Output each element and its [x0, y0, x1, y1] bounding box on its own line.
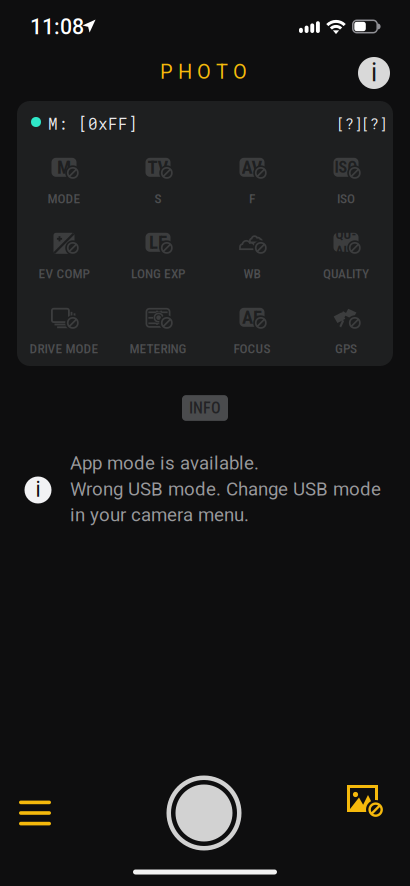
button[interactable]: Info	[352, 51, 396, 95]
staticText: in your camera menu.	[70, 504, 249, 526]
button[interactable]: LE	[111, 233, 205, 285]
staticText: P H O T O	[160, 60, 247, 84]
staticText: MODE	[47, 191, 80, 206]
staticText: [?]	[336, 114, 363, 133]
staticText: AF	[242, 306, 262, 328]
staticText: DRIVE MODE	[29, 341, 98, 356]
button[interactable]: AF	[205, 308, 299, 360]
staticText: i	[371, 58, 377, 87]
staticText: 11:08	[30, 14, 84, 39]
staticText: ISO	[337, 191, 355, 206]
staticText: App mode is available.	[70, 452, 259, 474]
staticText: WB	[243, 266, 260, 281]
staticText: AV	[241, 156, 262, 178]
staticText: i	[35, 477, 40, 502]
button[interactable]: TV	[111, 158, 205, 210]
staticText: METERING	[129, 341, 186, 356]
staticText: QUALITY	[323, 266, 369, 281]
button[interactable]: METERING	[111, 308, 205, 360]
staticText: M	[57, 156, 71, 178]
button[interactable]: ISO	[299, 158, 393, 210]
button[interactable]: QUAL	[299, 233, 393, 285]
staticText: LONG EXP	[131, 266, 185, 281]
staticText: FOCUS	[233, 341, 270, 356]
staticText: M: [0xFF]	[48, 113, 138, 134]
button[interactable]: GPS	[299, 308, 393, 360]
staticText: GPS	[335, 341, 357, 356]
staticText: EV COMP	[38, 266, 89, 281]
staticText: ISO	[334, 158, 357, 177]
staticText: QUAL	[335, 227, 356, 258]
staticText: S	[154, 191, 161, 206]
staticText: [?]	[361, 114, 388, 133]
button[interactable]: AV	[205, 158, 299, 210]
button[interactable]: DRIVE MODE	[17, 308, 111, 360]
button[interactable]: M	[17, 158, 111, 210]
staticText: Wrong USB mode. Change USB mode	[70, 478, 381, 500]
button[interactable]: Menu	[7, 785, 63, 841]
button[interactable]: Shutter	[162, 771, 246, 855]
staticText: LE	[149, 231, 167, 253]
button[interactable]: WB	[205, 233, 299, 285]
button[interactable]: Gallery	[347, 785, 403, 841]
staticText: F	[249, 191, 255, 206]
staticText: TV	[147, 156, 168, 178]
button[interactable]: EV COMP	[17, 233, 111, 285]
staticText: INFO	[189, 399, 221, 417]
